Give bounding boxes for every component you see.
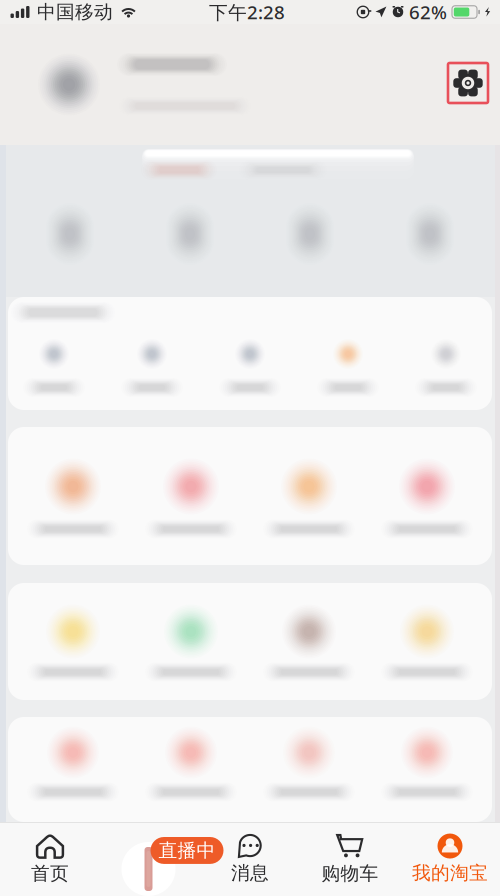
staticText: 首页 (31, 862, 69, 885)
staticText: 我的淘宝 (412, 861, 488, 884)
staticText: 下午2:28 (209, 0, 285, 24)
staticText: 中国移动 (37, 0, 113, 23)
staticText: 62% (409, 0, 447, 24)
staticText: 消息 (231, 861, 269, 884)
staticText: 购物车 (321, 862, 378, 885)
button[interactable]: 设置 (448, 63, 488, 103)
button[interactable]: 我的淘宝 (400, 822, 500, 896)
button[interactable]: 直播中 (100, 822, 200, 896)
button[interactable]: 购物车 (300, 822, 400, 896)
button[interactable]: 消息 (200, 822, 300, 896)
staticText: 直播中 (158, 839, 215, 862)
button[interactable]: 首页 (0, 822, 100, 896)
